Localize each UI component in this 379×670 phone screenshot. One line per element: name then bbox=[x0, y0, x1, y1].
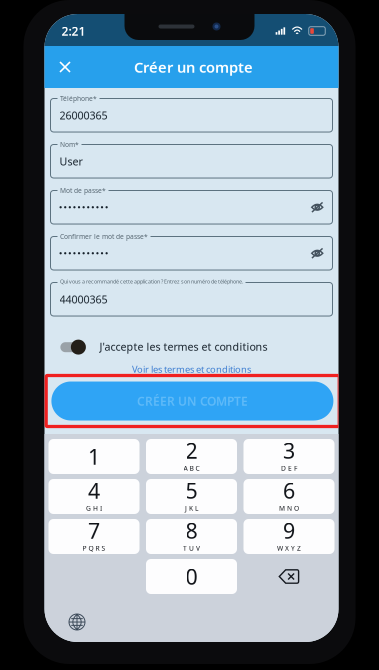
button[interactable]: 3 bbox=[243, 439, 334, 474]
staticText: Nom* bbox=[60, 140, 79, 149]
button[interactable]: Supprimer bbox=[243, 559, 334, 594]
button[interactable]: 9 bbox=[243, 519, 334, 554]
button[interactable]: Changer de clavier bbox=[61, 608, 93, 636]
staticText: Créer un compte bbox=[134, 57, 253, 77]
staticText: 6 bbox=[283, 476, 295, 505]
button[interactable]: J'accepte les termes et conditions bbox=[99, 338, 299, 354]
staticText: Mot de passe* bbox=[60, 186, 106, 195]
staticText: P Q R S bbox=[82, 544, 105, 553]
staticText: Confirmer le mot de passe* bbox=[60, 232, 148, 241]
staticText: T U V bbox=[183, 544, 200, 553]
staticText: 7 bbox=[88, 516, 100, 545]
staticText: 26000365 bbox=[59, 108, 107, 122]
button[interactable]: 4 bbox=[48, 479, 139, 514]
button[interactable]: Afficher le mot de passe bbox=[311, 247, 323, 259]
staticText: User bbox=[59, 154, 82, 168]
staticText: 2 bbox=[185, 436, 197, 465]
staticText: CRÉER UN COMPTE bbox=[137, 393, 248, 409]
staticText: G H I bbox=[86, 504, 102, 513]
button[interactable]: Afficher le mot de passe bbox=[311, 201, 323, 213]
staticText: Qui vous a recommandé cette application … bbox=[60, 278, 243, 285]
staticText: 9 bbox=[283, 516, 295, 545]
button[interactable]: 0 bbox=[146, 559, 237, 594]
button[interactable]: Voir les termes et conditions bbox=[132, 362, 251, 376]
staticText: 44000365 bbox=[59, 292, 107, 306]
staticText: 0 bbox=[185, 562, 197, 591]
staticText: 4 bbox=[88, 476, 100, 505]
staticText: 8 bbox=[185, 516, 197, 545]
staticText: A B C bbox=[183, 464, 199, 473]
button[interactable]: J'accepte les termes et conditions bbox=[60, 339, 86, 355]
staticText: D E F bbox=[281, 464, 297, 473]
button[interactable]: 7 bbox=[48, 519, 139, 554]
staticText: 2:21 bbox=[61, 23, 85, 39]
staticText: Voir les termes et conditions bbox=[132, 363, 251, 375]
staticText: 1 bbox=[88, 442, 100, 471]
button[interactable]: CRÉER UN COMPTE bbox=[51, 381, 333, 420]
staticText: W X Y Z bbox=[277, 544, 301, 553]
button[interactable]: 1 bbox=[48, 439, 139, 474]
button[interactable]: 6 bbox=[243, 479, 334, 514]
staticText: J K L bbox=[185, 504, 198, 513]
staticText: 3 bbox=[283, 436, 295, 465]
button[interactable]: Fermer bbox=[44, 46, 85, 88]
staticText: M N O bbox=[279, 504, 299, 513]
staticText: 5 bbox=[185, 476, 197, 505]
staticText: Téléphone* bbox=[60, 94, 97, 103]
button[interactable]: 5 bbox=[146, 479, 237, 514]
button[interactable]: 2 bbox=[146, 439, 237, 474]
staticText: J'accepte les termes et conditions bbox=[99, 339, 267, 354]
button[interactable]: 8 bbox=[146, 519, 237, 554]
